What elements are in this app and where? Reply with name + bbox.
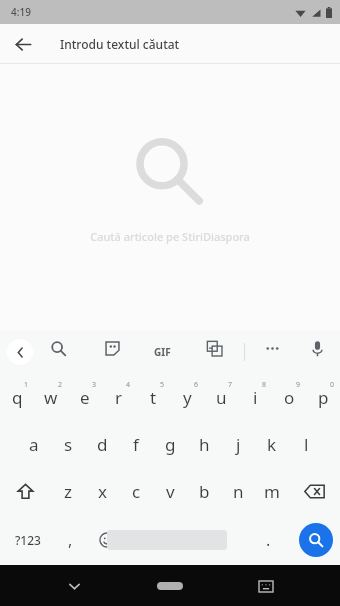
staticText: n [233,480,244,503]
staticText: GIF [154,345,171,359]
button[interactable]: Voice input [300,331,334,365]
button[interactable]: Search [41,331,75,365]
button[interactable]: f [119,421,153,468]
button[interactable]: c [119,468,153,515]
button[interactable]: q [0,373,34,421]
button[interactable]: Search [299,523,333,557]
staticText: w [44,386,58,409]
button[interactable]: m [255,468,289,515]
staticText: l [304,433,309,456]
staticText: 4 [126,380,131,390]
button[interactable]: Shift [0,468,51,515]
button[interactable]: More options [255,331,289,365]
staticText: 2 [58,380,63,390]
button[interactable]: Home [157,582,183,590]
button[interactable]: j [221,421,255,468]
button[interactable]: , [54,518,86,562]
staticText: r [115,386,123,409]
staticText: c [132,480,141,503]
button[interactable]: r [102,373,136,421]
button[interactable]: GIF [148,331,182,365]
staticText: u [216,386,227,409]
button[interactable]: Backspace [289,468,340,515]
staticText: m [264,480,280,503]
button[interactable]: u [204,373,238,421]
staticText: x [98,480,107,503]
staticText: 6 [194,380,199,390]
button[interactable]: l [289,421,323,468]
button[interactable]: Translate [197,331,231,365]
button[interactable]: Emoji [91,524,123,556]
staticText: p [318,386,329,409]
button[interactable]: o [272,373,306,421]
button[interactable]: . [253,518,283,562]
staticText: j [236,433,241,456]
staticText: z [64,480,72,503]
button[interactable]: Back [6,27,40,61]
staticText: 9 [296,380,301,390]
staticText: 1 [24,380,29,390]
button[interactable]: Stickers [95,331,129,365]
staticText: 8 [262,380,267,390]
button[interactable]: s [51,421,85,468]
staticText: d [97,433,108,456]
button[interactable]: ?123 [4,518,52,562]
button[interactable]: i [238,373,272,421]
button[interactable]: d [85,421,119,468]
button[interactable]: t [136,373,170,421]
staticText: 5 [160,380,165,390]
staticText: q [12,386,23,409]
button[interactable]: Switch keyboard [250,570,282,602]
button[interactable]: n [221,468,255,515]
button[interactable]: b [187,468,221,515]
staticText: t [150,386,157,409]
staticText: e [80,386,90,409]
staticText: Introdu textul căutat [60,36,180,52]
staticText: . [266,529,271,551]
button[interactable]: z [51,468,85,515]
button[interactable]: x [85,468,119,515]
button[interactable]: Hide keyboard [58,570,90,602]
button[interactable]: g [153,421,187,468]
staticText: , [68,529,73,551]
button[interactable]: a [17,421,51,468]
staticText: 4:19 [11,5,31,19]
staticText: Caută articole pe StiriDiaspora [90,229,250,244]
button[interactable]: e [68,373,102,421]
staticText: v [166,480,175,503]
staticText: 3 [92,380,97,390]
staticText: 7 [228,380,233,390]
staticText: o [284,386,295,409]
staticText: g [165,433,176,456]
button[interactable]: Collapse toolbar [7,339,33,365]
button[interactable]: p [306,373,340,421]
button[interactable]: w [34,373,68,421]
staticText: h [199,433,210,456]
staticText: k [267,433,277,456]
staticText: s [64,433,73,456]
button[interactable]: h [187,421,221,468]
staticText: ?123 [15,532,41,548]
staticText: 0 [330,380,335,390]
button[interactable]: v [153,468,187,515]
button[interactable]: y [170,373,204,421]
staticText: a [29,433,39,456]
staticText: f [133,433,139,456]
staticText: b [199,480,210,503]
button[interactable]: k [255,421,289,468]
staticText: i [253,386,258,409]
staticText: y [183,386,192,409]
